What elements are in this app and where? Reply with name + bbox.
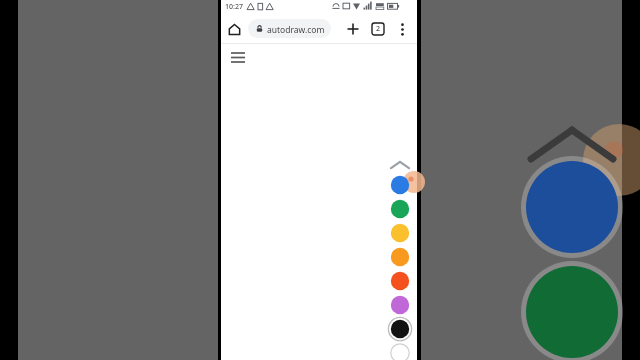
button[interactable]: New tab — [344, 20, 362, 38]
button[interactable]: Home — [225, 20, 243, 38]
button[interactable]: Purple — [389, 294, 411, 316]
button[interactable]: Menu — [227, 46, 249, 68]
button[interactable]: White — [389, 342, 411, 360]
button[interactable]: Blue — [389, 174, 411, 196]
button[interactable]: Collapse palette — [388, 158, 412, 172]
button[interactable]: More options — [393, 20, 411, 38]
button[interactable]: Green — [389, 198, 411, 220]
button[interactable]: Orange — [389, 246, 411, 268]
button[interactable]: Black — [389, 318, 411, 340]
button[interactable]: Switch tabs, 2 open — [369, 20, 387, 38]
staticText: 10:27 — [225, 2, 243, 12]
button[interactable]: Red — [389, 270, 411, 292]
staticText: autodraw.com — [267, 24, 325, 36]
staticText: 2 — [376, 24, 381, 34]
button[interactable]: autodraw.com — [248, 19, 331, 38]
button[interactable]: Yellow — [389, 222, 411, 244]
